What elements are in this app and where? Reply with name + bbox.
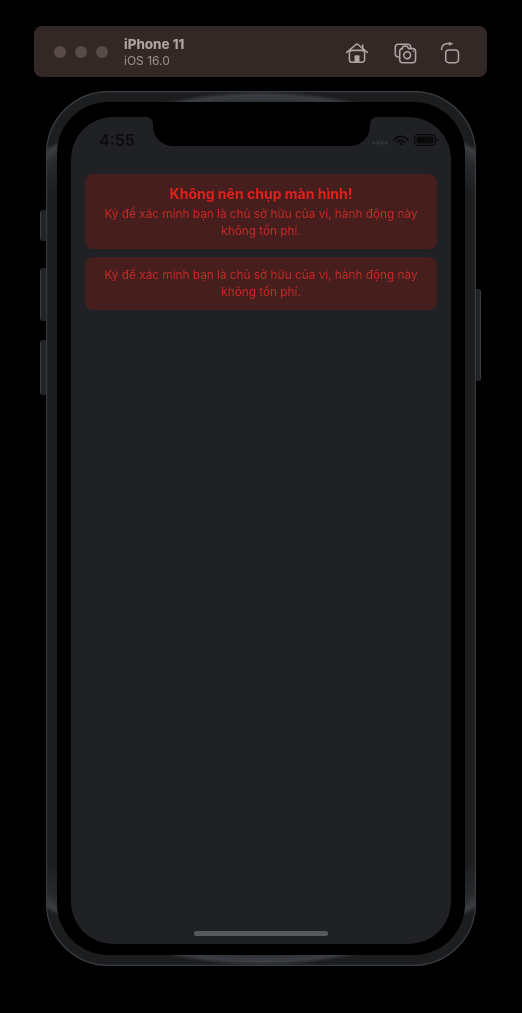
button[interactable]: Window control (96, 46, 108, 58)
button[interactable]: Screenshot (391, 39, 419, 67)
button[interactable]: Ký để xác minh bạn là chủ sở hữu của ví,… (85, 257, 437, 310)
button[interactable]: Không nên chụp màn hình! (85, 174, 437, 249)
staticText: iOS 16.0 (124, 53, 170, 68)
button[interactable]: Rotate device (437, 39, 465, 67)
staticText: Ký để xác minh bạn là chủ sở hữu của ví,… (93, 207, 429, 238)
staticText: iPhone 11 (124, 36, 185, 52)
button[interactable]: Window control (54, 46, 66, 58)
staticText: 4:55 (99, 130, 135, 149)
staticText: Không nên chụp màn hình! (93, 185, 429, 202)
staticText: Ký để xác minh bạn là chủ sở hữu của ví,… (93, 268, 429, 299)
button[interactable]: Home (343, 39, 371, 67)
button[interactable]: Window control (75, 46, 87, 58)
